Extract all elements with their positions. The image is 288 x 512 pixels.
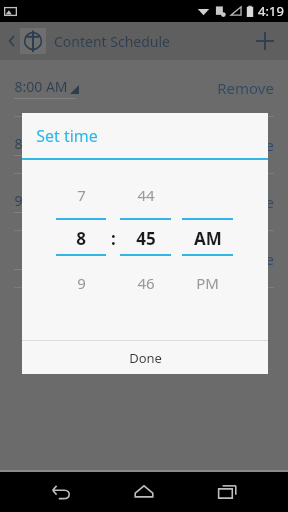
button[interactable]: Recents <box>205 472 249 512</box>
staticText: 45 <box>136 227 156 250</box>
button[interactable]: Back <box>4 33 20 49</box>
staticText: PM <box>196 273 219 293</box>
button[interactable]: 7 <box>56 185 106 205</box>
staticText: : <box>111 227 116 250</box>
staticText: 9:30 AM <box>14 191 68 210</box>
staticText: Remove <box>217 192 274 212</box>
staticText: AM <box>194 227 222 250</box>
staticText: Set time <box>36 125 98 147</box>
button[interactable]: AM <box>182 227 233 250</box>
staticText: 46 <box>137 273 155 293</box>
staticText: Content Schedule <box>54 32 170 51</box>
staticText: 9 <box>77 273 86 293</box>
staticText: 44 <box>137 185 155 205</box>
button[interactable]: 45 <box>120 227 171 250</box>
button[interactable]: Add <box>246 22 284 60</box>
button[interactable]: 8:45 AM <box>0 117 288 173</box>
button[interactable]: 8 <box>56 227 106 250</box>
button[interactable]: Remove <box>217 78 274 98</box>
button[interactable]: Back <box>0 22 288 60</box>
button[interactable]: PM <box>182 273 233 293</box>
button[interactable]: 9:30 AM <box>0 174 288 230</box>
staticText: 8:00 AM <box>14 77 68 96</box>
button[interactable]: Remove <box>217 135 274 155</box>
staticText: 4:19 <box>258 2 284 20</box>
button[interactable]: 44 <box>120 185 171 205</box>
button[interactable]: 46 <box>120 273 171 293</box>
button[interactable]: 8:45 AM <box>14 134 76 156</box>
staticText: 8:45 AM <box>14 134 68 153</box>
staticText: Remove <box>217 249 274 269</box>
staticText: 8 <box>76 227 86 250</box>
button[interactable]: Remove <box>0 231 288 287</box>
staticText: 7 <box>77 185 86 205</box>
button[interactable]: 9:30 AM <box>14 191 76 213</box>
staticText: Remove <box>217 78 274 98</box>
button[interactable]: Done <box>22 341 268 374</box>
button[interactable]: Remove <box>217 192 274 212</box>
staticText: Done <box>129 349 162 367</box>
button[interactable]: 8:00 AM <box>0 60 288 116</box>
button[interactable]: 8:00 AM <box>14 77 76 99</box>
button[interactable]: Back <box>39 472 83 512</box>
button[interactable]: 9 <box>56 273 106 293</box>
button[interactable]: Remove <box>217 249 274 269</box>
staticText: Remove <box>217 135 274 155</box>
button[interactable]: Home <box>122 472 166 512</box>
button[interactable] <box>14 248 76 270</box>
